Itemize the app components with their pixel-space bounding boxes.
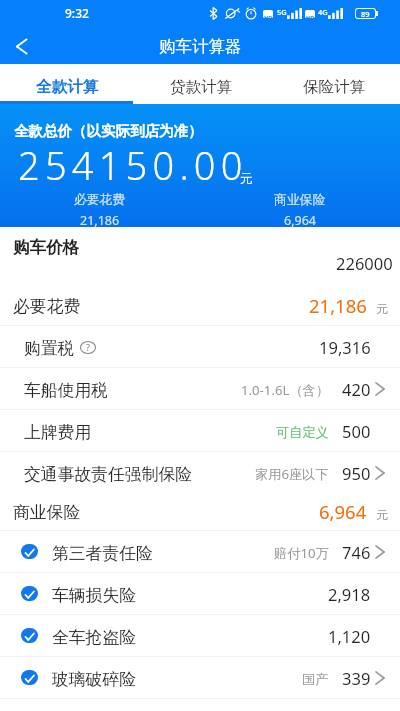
staticText: 家用6座以下 <box>255 465 329 483</box>
staticText: 商业保险 <box>13 502 81 523</box>
staticText: 2,918 <box>328 583 371 605</box>
staticText: 全款计算 <box>36 77 98 97</box>
button[interactable]: 购置税 <box>0 326 400 367</box>
button[interactable]: 车船使用税 <box>0 368 400 409</box>
staticText: 必要花费 <box>74 192 126 208</box>
staticText: 购车计算器 <box>159 36 242 57</box>
staticText: 可自定义 <box>276 424 329 441</box>
staticText: 全款总价（以实际到店为准） <box>14 122 203 140</box>
staticText: 420 <box>342 378 371 400</box>
staticText: 89 <box>361 9 370 18</box>
staticText: 1.0-1.6L（含） <box>241 381 329 399</box>
staticText: HD <box>306 14 315 18</box>
staticText: 4G <box>318 7 328 17</box>
staticText: 746 <box>342 541 371 563</box>
staticText: 226000 <box>336 252 393 274</box>
staticText: 购车价格 <box>13 237 79 258</box>
staticText: 保险计算 <box>303 77 365 97</box>
staticText: 254150.00 <box>18 139 248 191</box>
button[interactable]: 上牌费用 <box>0 410 400 451</box>
staticText: 6,964 <box>284 212 316 227</box>
staticText: 商业保险 <box>274 192 326 208</box>
staticText: 车船使用税 <box>24 380 108 401</box>
button[interactable]: 玻璃破碎险 <box>0 657 400 698</box>
staticText: 19,316 <box>319 336 371 358</box>
staticText: 第三者责任险 <box>52 543 153 564</box>
staticText: 赔付10万 <box>274 544 329 562</box>
staticText: 21,186 <box>309 293 367 318</box>
staticText: 交通事故责任强制保险 <box>24 464 192 485</box>
button[interactable]: Back <box>6 31 36 61</box>
staticText: 21,186 <box>80 212 120 227</box>
button[interactable]: 商业保险 <box>0 493 400 530</box>
button[interactable]: 必要花费 <box>0 285 400 325</box>
staticText: 950 <box>342 462 371 484</box>
staticText: 必要花费 <box>13 296 81 317</box>
staticText: 元 <box>240 171 253 187</box>
button[interactable]: 车辆损失险 <box>0 573 400 614</box>
staticText: 元 <box>376 301 388 316</box>
staticText: 500 <box>342 420 371 442</box>
staticText: 5G <box>277 7 287 17</box>
button[interactable]: 保险计算 <box>267 64 400 104</box>
staticText: 购置税 <box>24 338 75 359</box>
button[interactable]: 购车价格 <box>0 227 400 285</box>
staticText: 9:32 <box>65 5 89 21</box>
staticText: 贷款计算 <box>170 77 232 97</box>
staticText: 339 <box>342 667 371 689</box>
button[interactable]: 贷款计算 <box>134 64 267 104</box>
button[interactable]: 第三者责任险 <box>0 531 400 572</box>
staticText: 6,964 <box>319 499 367 524</box>
staticText: 国产 <box>302 671 329 688</box>
staticText: HD <box>264 14 273 18</box>
staticText: 元 <box>376 507 388 522</box>
button[interactable]: 全款计算 <box>0 64 134 104</box>
staticText: ? <box>86 341 90 353</box>
staticText: 车辆损失险 <box>52 585 136 606</box>
staticText: 玻璃破碎险 <box>52 669 136 690</box>
staticText: 全车抢盗险 <box>52 627 136 648</box>
button[interactable]: 交通事故责任强制保险 <box>0 452 400 493</box>
staticText: 1,120 <box>328 625 371 647</box>
button[interactable]: 全车抢盗险 <box>0 615 400 656</box>
staticText: 上牌费用 <box>24 422 92 443</box>
